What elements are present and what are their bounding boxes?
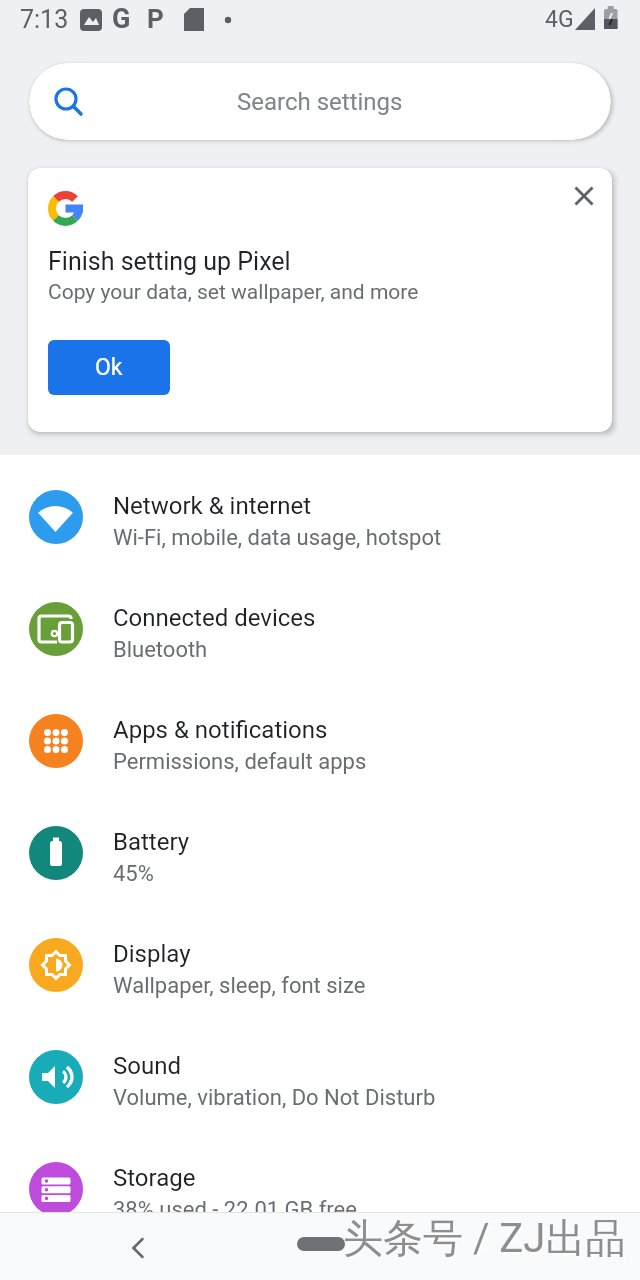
staticText: Wi-Fi, mobile, data usage, hotspot <box>113 525 442 551</box>
staticText: Display <box>113 940 191 968</box>
button[interactable]: Connected devices <box>0 573 640 685</box>
staticText: Volume, vibration, Do Not Disturb <box>113 1085 436 1111</box>
staticText: 45% <box>113 861 154 887</box>
staticText: Battery <box>113 828 190 856</box>
staticText: Search settings <box>237 88 403 116</box>
staticText: Permissions, default apps <box>113 749 367 775</box>
staticText: G <box>112 3 131 35</box>
staticText: 4G <box>545 6 574 33</box>
staticText: Sound <box>113 1052 181 1080</box>
button[interactable]: Network & internet <box>0 461 640 573</box>
button[interactable]: Storage <box>0 1133 640 1245</box>
button[interactable]: Sound <box>0 1021 640 1133</box>
button[interactable] <box>110 1220 166 1276</box>
button[interactable]: Display <box>0 909 640 1021</box>
staticText: Apps & notifications <box>113 716 328 744</box>
staticText: P <box>147 4 164 34</box>
staticText: Network & internet <box>113 492 312 520</box>
button[interactable]: Apps & notifications <box>0 685 640 797</box>
staticText: Storage <box>113 1164 196 1192</box>
staticText: 38% used - 22.01 GB free <box>113 1197 357 1223</box>
staticText: Bluetooth <box>113 637 208 663</box>
button[interactable]: Ok <box>48 340 170 395</box>
staticText: Copy your data, set wallpaper, and more <box>48 280 419 305</box>
staticText: 头条号 / ZJ出品 <box>343 1213 626 1263</box>
staticText: Finish setting up Pixel <box>48 247 291 276</box>
button[interactable] <box>297 1237 345 1251</box>
staticText: Connected devices <box>113 604 316 632</box>
button[interactable]: Battery <box>0 797 640 909</box>
staticText: 7:13 <box>20 5 69 34</box>
staticText: 头条号 / ZJ出品 <box>345 1215 628 1265</box>
button[interactable]: Search settings <box>29 63 611 140</box>
staticText: Ok <box>95 354 123 381</box>
button[interactable] <box>568 180 600 212</box>
staticText: Wallpaper, sleep, font size <box>113 973 366 999</box>
